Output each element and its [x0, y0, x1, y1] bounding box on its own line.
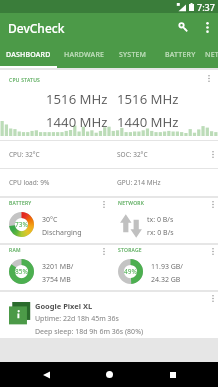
staticText: Deep sleep: 18d 9h 6m 36s (80%) — [35, 327, 144, 337]
button[interactable]: CPU STATUS — [0, 70, 218, 140]
staticText: SYSTEM — [119, 50, 147, 60]
staticText: Google Pixel XL — [35, 301, 93, 311]
button[interactable]: More options — [205, 244, 218, 259]
staticText: CPU STATUS — [9, 77, 41, 84]
staticText: CPU load: 9% — [9, 178, 50, 187]
staticText: 3201 MB/ — [42, 262, 74, 272]
button[interactable]: More options — [196, 13, 218, 42]
button[interactable]: More options — [96, 197, 111, 212]
button[interactable]: HARDWARE — [57, 42, 111, 68]
button[interactable]: DASHBOARD — [0, 42, 57, 68]
staticText: 1516 MHz — [46, 90, 108, 108]
staticText: STORAGE — [118, 247, 142, 254]
staticText: 1440 MHz — [46, 113, 108, 131]
button[interactable]: NETWORK — [109, 198, 218, 243]
button[interactable]: RAM — [0, 245, 109, 290]
staticText: SOC: 32°C — [117, 150, 148, 159]
staticText: DASHBOARD — [6, 50, 51, 60]
staticText: 11.93 GB/ — [151, 262, 183, 272]
button[interactable]: More options — [96, 244, 111, 259]
staticText: 1440 MHz — [117, 113, 179, 131]
staticText: 85% — [15, 267, 28, 276]
staticText: 1516 MHz — [117, 90, 179, 108]
staticText: Uptime: 22d 18h 45m 36s — [35, 314, 119, 324]
staticText: DevCheck — [8, 20, 65, 36]
staticText: 73% — [15, 220, 28, 229]
button[interactable]: STORAGE — [109, 245, 218, 290]
button[interactable]: SYSTEM — [111, 42, 155, 68]
button[interactable]: More options — [205, 291, 218, 306]
staticText: 7:37 — [197, 1, 215, 13]
button[interactable]: CPU: 32°C — [0, 141, 218, 168]
staticText: 30°C — [42, 215, 58, 225]
staticText: NETWORK — [118, 200, 145, 207]
button[interactable]: More options — [205, 147, 218, 162]
staticText: NET — [205, 50, 218, 60]
staticText: rx: 0 B/s — [147, 228, 174, 238]
staticText: 3754 MB — [42, 275, 71, 285]
staticText: 49% — [124, 267, 137, 276]
staticText: Discharging — [42, 228, 82, 238]
button[interactable]: BATTERY — [0, 198, 109, 243]
staticText: CPU: 32°C — [9, 150, 40, 159]
button[interactable]: More options — [205, 197, 218, 212]
staticText: RAM — [9, 247, 21, 254]
button[interactable]: NET — [205, 42, 218, 68]
staticText: tx: 0 B/s — [147, 215, 174, 225]
button[interactable]: More options — [201, 71, 216, 86]
staticText: HARDWARE — [64, 50, 105, 60]
staticText: BATTERY — [165, 50, 196, 60]
button[interactable]: CPU load: 9% — [0, 169, 218, 196]
staticText: BATTERY — [9, 200, 32, 207]
button[interactable]: Tools — [170, 13, 196, 42]
button[interactable]: Google Pixel XL — [0, 292, 218, 338]
staticText: GPU: 214 MHz — [117, 178, 161, 187]
staticText: 24.32 GB — [151, 275, 181, 285]
button[interactable]: Back — [28, 362, 64, 387]
button[interactable]: Recent apps — [155, 362, 191, 387]
button[interactable]: Home — [91, 362, 127, 387]
button[interactable]: BATTERY — [155, 42, 205, 68]
